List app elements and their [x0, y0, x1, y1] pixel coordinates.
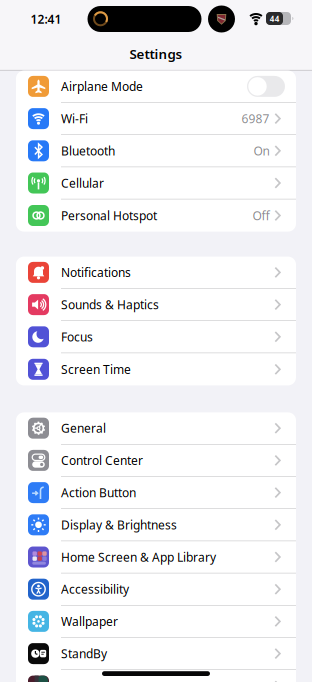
- staticText: 44: [270, 13, 280, 24]
- button[interactable]: Airplane Mode: [247, 76, 285, 97]
- staticText: Wallpaper: [61, 613, 118, 629]
- staticText: Personal Hotspot: [61, 207, 157, 223]
- staticText: On: [253, 143, 269, 159]
- staticText: Wi-Fi: [61, 111, 88, 126]
- staticText: Control Center: [61, 452, 143, 468]
- staticText: Accessibility: [61, 581, 129, 597]
- button[interactable]: Bluetooth: [16, 135, 296, 167]
- button[interactable]: StandBy: [16, 638, 296, 669]
- button[interactable]: Wallpaper: [16, 606, 296, 637]
- staticText: Focus: [61, 329, 93, 345]
- staticText: Airplane Mode: [61, 78, 143, 94]
- button[interactable]: Focus: [16, 321, 296, 353]
- button[interactable]: Home Screen & App Library: [16, 541, 296, 573]
- staticText: Display & Brightness: [61, 517, 177, 533]
- button[interactable]: Wi-Fi: [16, 103, 296, 134]
- staticText: Screen Time: [61, 361, 131, 377]
- staticText: Action Button: [61, 485, 136, 500]
- staticText: StandBy: [61, 646, 107, 661]
- button[interactable]: Display & Brightness: [16, 509, 296, 541]
- button[interactable]: Cellular: [16, 167, 296, 199]
- staticText: Settings: [129, 45, 182, 63]
- staticText: Sounds & Haptics: [61, 297, 159, 312]
- button[interactable]: Siri & Search: [16, 670, 296, 682]
- staticText: 6987: [241, 111, 269, 126]
- button[interactable]: Accessibility: [16, 573, 296, 605]
- staticText: General: [61, 420, 106, 436]
- button[interactable]: Screen Time: [16, 353, 296, 385]
- staticText: Notifications: [61, 264, 131, 280]
- button[interactable]: Action Button: [16, 477, 296, 508]
- staticText: Bluetooth: [61, 143, 115, 159]
- staticText: 12:41: [30, 11, 61, 27]
- staticText: Off: [252, 207, 269, 223]
- staticText: Home Screen & App Library: [61, 549, 216, 565]
- button[interactable]: Sounds & Haptics: [16, 289, 296, 320]
- staticText: Cellular: [61, 175, 104, 191]
- button[interactable]: Control Center: [16, 445, 296, 476]
- button[interactable]: Notifications: [16, 257, 296, 288]
- button[interactable]: Airplane Mode: [16, 71, 296, 102]
- button[interactable]: General: [16, 412, 296, 444]
- button[interactable]: Personal Hotspot: [16, 199, 296, 232]
